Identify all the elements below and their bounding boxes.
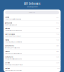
button[interactable]: Dana Reyes [4, 44, 61, 49]
button[interactable]: Jenna Cole [4, 21, 61, 26]
staticText: Search [29, 12, 35, 13]
button[interactable]: Linear [4, 49, 61, 55]
staticText: 9:41 [56, 16, 59, 18]
button[interactable]: Notion [4, 66, 61, 72]
staticText: Your receipt from Apple [5, 18, 21, 20]
staticText: Sofia Park [5, 56, 13, 58]
staticText: Stripe [5, 62, 10, 64]
staticText: Photos from the weekend [5, 58, 22, 60]
staticText: Linear [5, 50, 10, 52]
staticText: Your team has comments [5, 41, 22, 43]
staticText: Jenna Cole [5, 22, 12, 24]
staticText: Sun [56, 62, 59, 64]
button[interactable]: GitHub [4, 27, 61, 32]
button[interactable]: Marcus Webb [4, 32, 61, 38]
staticText: Updated Just Now [26, 6, 37, 8]
staticText: All Inboxes [24, 2, 40, 5]
staticText: Re: Project kickoff [5, 24, 17, 26]
staticText: 8:54 [56, 28, 59, 29]
button[interactable]: Stripe [4, 61, 61, 66]
staticText: 3 issues assigned to you [5, 52, 22, 54]
staticText: Tue [56, 33, 59, 35]
staticText: GitHub [5, 28, 10, 29]
staticText: Apple [5, 16, 9, 18]
button[interactable]: Apple [4, 15, 61, 21]
staticText: Lunch on Thursday? [5, 35, 21, 37]
staticText: Sat [57, 68, 59, 69]
staticText: New pull request opened [5, 30, 22, 31]
staticText: Invoice 2847 attached [5, 47, 20, 49]
staticText: Dana Reyes [5, 45, 14, 47]
staticText: Payout scheduled Friday [5, 64, 23, 66]
button[interactable]: Figma [4, 38, 61, 43]
staticText: Weekly digest: 12 updates [5, 70, 22, 71]
button[interactable]: Sofia Park [4, 55, 61, 60]
staticText: Notion [5, 68, 10, 69]
staticText: Figma [5, 39, 9, 41]
staticText: Marcus Webb [5, 33, 15, 35]
staticText: Mon [56, 50, 59, 52]
staticText: Mon [56, 45, 59, 47]
